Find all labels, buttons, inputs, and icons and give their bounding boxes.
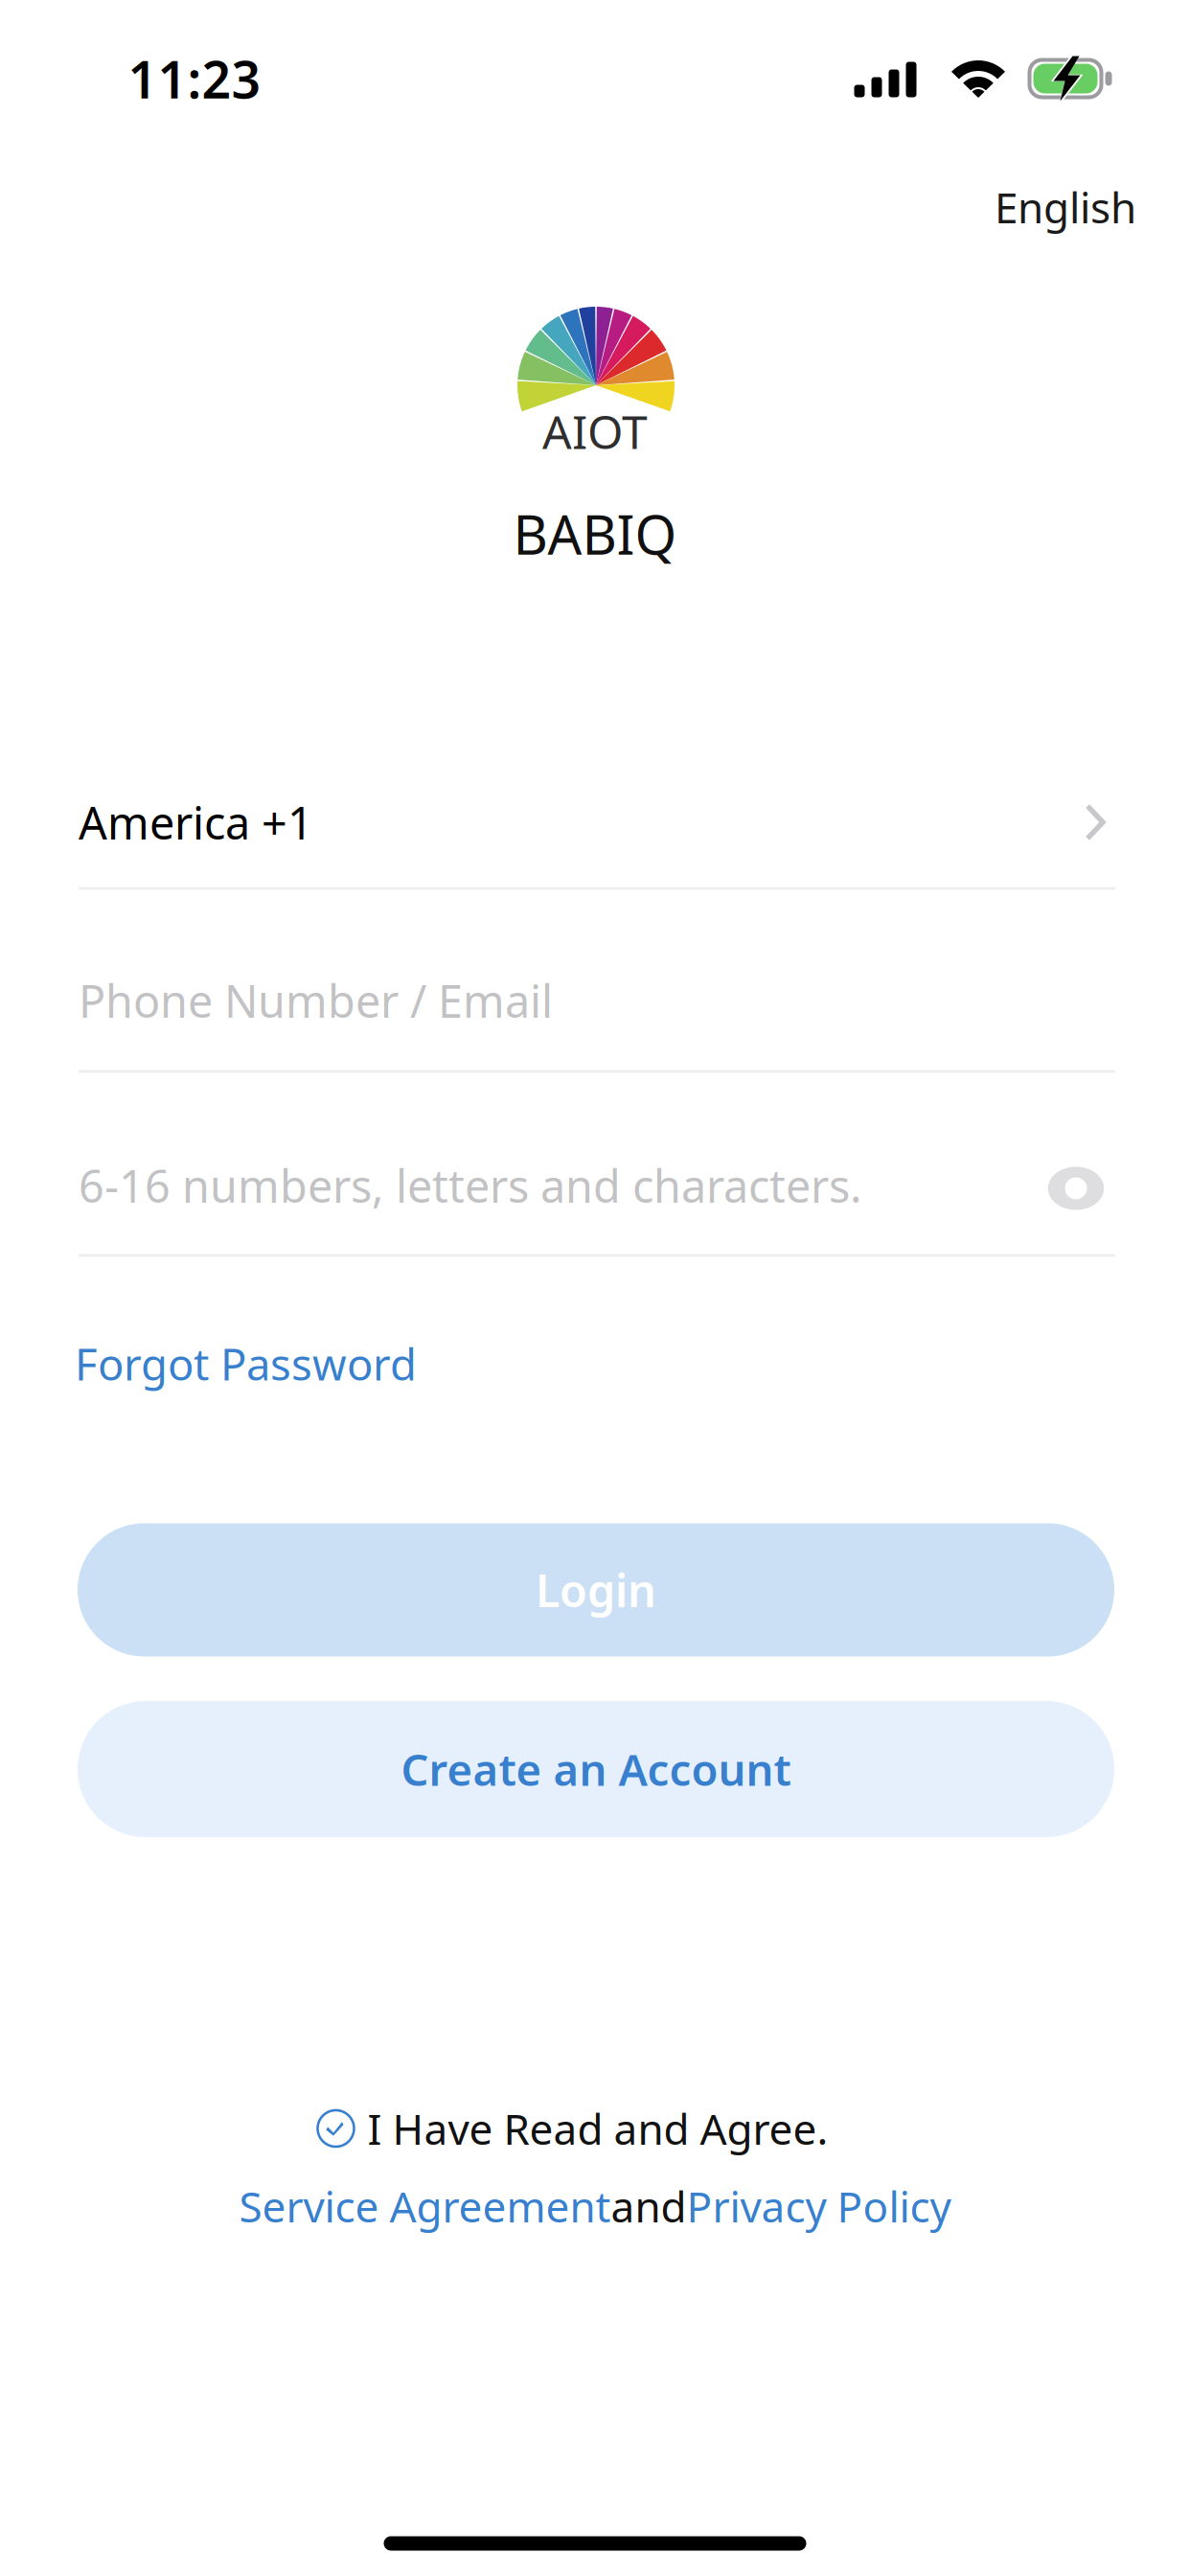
staticText: and bbox=[611, 2178, 687, 2234]
staticText: Login bbox=[536, 1560, 656, 1620]
staticText: BABIQ bbox=[513, 498, 677, 569]
staticText: 6-16 numbers, letters and characters. bbox=[79, 1156, 862, 1215]
button[interactable]: I Have Read and Agree. bbox=[141, 2094, 1003, 2163]
staticText: Create an Account bbox=[401, 1740, 791, 1798]
staticText: America +1 bbox=[79, 793, 313, 852]
staticText: Service Agreement bbox=[239, 2178, 611, 2234]
button[interactable]: Show password bbox=[1047, 1165, 1105, 1211]
button[interactable]: Login bbox=[78, 1523, 1114, 1656]
staticText: I Have Read and Agree. bbox=[367, 2100, 828, 2156]
button[interactable]: Service Agreement bbox=[239, 2178, 611, 2234]
staticText: 11:23 bbox=[128, 45, 261, 113]
button[interactable]: America +1 bbox=[79, 744, 1115, 901]
button[interactable]: English bbox=[926, 169, 1136, 245]
button[interactable]: Forgot Password bbox=[75, 1323, 477, 1404]
staticText: English bbox=[995, 179, 1136, 235]
staticText: Phone Number / Email bbox=[79, 971, 553, 1030]
staticText: AIOT bbox=[542, 401, 648, 462]
staticText: Forgot Password bbox=[75, 1335, 417, 1393]
button[interactable]: Create an Account bbox=[78, 1701, 1114, 1837]
staticText: Privacy Policy bbox=[687, 2178, 951, 2234]
button[interactable]: Privacy Policy bbox=[687, 2178, 951, 2234]
